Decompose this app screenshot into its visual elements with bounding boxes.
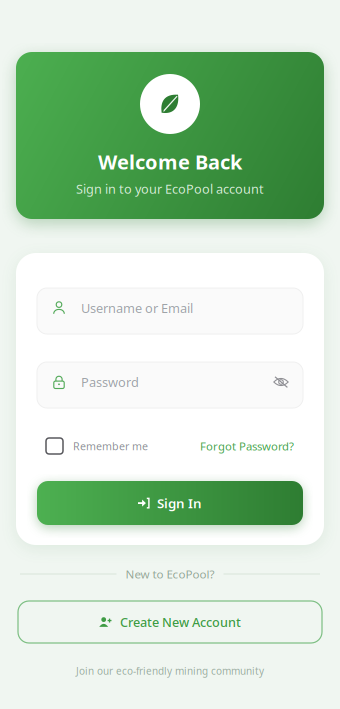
staticText: Remember me xyxy=(73,439,148,453)
button[interactable]: Remember me xyxy=(46,438,148,454)
staticText: Username or Email xyxy=(81,299,193,317)
staticText: Sign in to your EcoPool account xyxy=(76,180,264,197)
button[interactable]: Create New Account xyxy=(18,601,322,643)
button[interactable]: Forgot Password? xyxy=(200,438,294,454)
staticText: Forgot Password? xyxy=(200,438,294,454)
staticText: Password xyxy=(81,373,139,391)
staticText: Join our eco-friendly mining community xyxy=(76,664,264,678)
staticText: Welcome Back xyxy=(98,148,242,175)
staticText: Sign In xyxy=(157,494,202,512)
staticText: Create New Account xyxy=(120,613,241,631)
staticText: New to EcoPool? xyxy=(125,566,214,582)
button[interactable]: Sign In xyxy=(37,481,303,525)
